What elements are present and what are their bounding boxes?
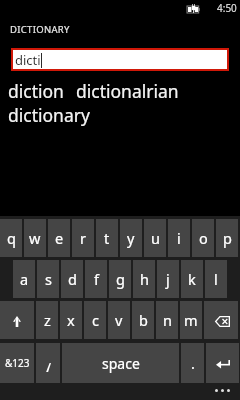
staticText: &123 [5, 356, 30, 370]
staticText: e [55, 228, 64, 248]
button[interactable]: Comma [36, 343, 60, 383]
staticText: w [29, 228, 41, 248]
staticText: z [44, 310, 51, 330]
button[interactable]: t [96, 219, 118, 257]
staticText: u [151, 228, 160, 248]
button[interactable]: . [181, 343, 204, 383]
button[interactable]: w [24, 219, 46, 257]
staticText: o [199, 228, 208, 248]
button[interactable]: x [60, 301, 82, 339]
button[interactable]: dictionary [8, 103, 90, 127]
button[interactable]: y [120, 219, 142, 257]
staticText: t [104, 228, 110, 248]
button[interactable]: space [62, 343, 179, 383]
staticText: b [139, 310, 148, 330]
button[interactable]: s [37, 260, 59, 298]
staticText: a [20, 269, 29, 289]
button[interactable]: n [156, 301, 178, 339]
button[interactable]: v [108, 301, 130, 339]
staticText: x [67, 310, 75, 330]
button[interactable]: j [157, 260, 179, 298]
button[interactable]: &123 [0, 343, 34, 383]
button[interactable]: f [85, 260, 107, 298]
staticText: k [188, 269, 196, 289]
staticText: v [115, 310, 123, 330]
staticText: d [68, 269, 77, 289]
button[interactable]: dicti [13, 50, 227, 69]
button[interactable]: q [0, 219, 22, 257]
staticText: i [177, 228, 181, 248]
staticText: p [223, 228, 232, 248]
button[interactable]: k [181, 260, 203, 298]
button[interactable]: e [48, 219, 70, 257]
staticText: g [116, 269, 125, 289]
button[interactable]: More options [215, 389, 230, 392]
staticText: space [102, 354, 140, 373]
staticText: DICTIONARY [10, 23, 70, 36]
button[interactable]: b [132, 301, 154, 339]
staticText: s [45, 269, 52, 289]
staticText: c [92, 310, 99, 330]
button[interactable]: a [13, 260, 35, 298]
button[interactable]: h [133, 260, 155, 298]
button[interactable]: Backspace [204, 301, 238, 339]
button[interactable]: r [72, 219, 94, 257]
staticText: j [166, 269, 170, 289]
button[interactable]: p [216, 219, 238, 257]
button[interactable]: diction [8, 79, 64, 103]
button[interactable]: g [109, 260, 131, 298]
button[interactable]: i [168, 219, 190, 257]
button[interactable]: dictionalrian [76, 79, 179, 103]
button[interactable]: l [205, 260, 227, 298]
staticText: l [214, 269, 218, 289]
button[interactable]: Enter [206, 343, 239, 383]
button[interactable]: z [36, 301, 58, 339]
staticText: n [163, 310, 172, 330]
staticText: 4:50 [217, 1, 237, 15]
button[interactable]: o [192, 219, 214, 257]
staticText: q [7, 228, 16, 248]
staticText: dicti [15, 51, 41, 69]
staticText: m [184, 310, 198, 330]
staticText: y [127, 228, 135, 248]
button[interactable]: d [61, 260, 83, 298]
staticText: f [94, 269, 99, 289]
staticText: . [191, 353, 195, 373]
staticText: h [140, 269, 149, 289]
button[interactable]: Shift [0, 301, 34, 339]
button[interactable]: m [180, 301, 202, 339]
staticText: r [80, 228, 86, 248]
button[interactable]: u [144, 219, 166, 257]
button[interactable]: c [84, 301, 106, 339]
